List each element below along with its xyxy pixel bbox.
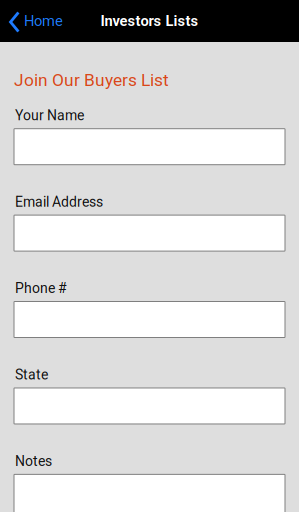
staticText: Investors Lists <box>100 12 198 30</box>
button[interactable]: Your Name <box>14 129 285 165</box>
staticText: State <box>15 366 48 383</box>
staticText: Phone # <box>15 280 67 296</box>
button[interactable]: Home <box>0 0 73 42</box>
staticText: Join Our Buyers List <box>14 70 169 90</box>
button[interactable]: Notes <box>14 474 285 512</box>
button[interactable]: State <box>14 388 285 424</box>
button[interactable]: Phone # <box>14 301 285 337</box>
staticText: Home <box>24 12 63 30</box>
button[interactable]: Email Address <box>14 215 285 251</box>
staticText: Email Address <box>15 194 103 210</box>
staticText: Notes <box>15 453 52 469</box>
staticText: Your Name <box>15 107 84 124</box>
